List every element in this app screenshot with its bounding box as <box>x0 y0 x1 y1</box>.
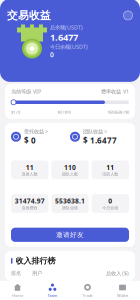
staticText: 直推费收 <box>22 205 38 210</box>
button[interactable]: Team <box>35 283 70 298</box>
button[interactable]: 受托收益 > <box>11 128 70 146</box>
staticText: Team <box>47 293 57 298</box>
button[interactable]: 邀请好友 <box>11 228 129 242</box>
staticText: Wallet <box>117 293 128 298</box>
staticText: Trade <box>82 293 92 298</box>
staticText: 邀请好友 <box>56 231 84 239</box>
button[interactable]: Wallet <box>105 283 140 298</box>
button[interactable]: Trade <box>70 283 105 298</box>
staticText: 团队业绩 <box>62 205 78 210</box>
staticText: 费率收益 V1 <box>101 88 129 95</box>
staticText: 用户 <box>32 270 42 277</box>
staticText: $593638 / $0 <box>108 110 129 115</box>
staticText: 总收入 ($) <box>106 270 129 277</box>
staticText: 交易收益 <box>7 9 51 22</box>
staticText: 排名 <box>11 270 21 277</box>
staticText: 直推人数 <box>22 172 38 177</box>
staticText: 活跃人数 <box>102 172 118 177</box>
staticText: 总余额(USDT) <box>50 24 83 31</box>
staticText: $ 1.6477 <box>83 135 117 146</box>
staticText: 1.6477 <box>50 31 78 43</box>
staticText: 受托收益 > <box>24 128 48 135</box>
staticText: Home <box>12 293 23 298</box>
staticText: 553638.1 <box>55 197 85 205</box>
staticText: 110 <box>64 163 76 172</box>
staticText: 团队收益 > <box>83 128 107 135</box>
staticText: 今日业绩 <box>102 205 118 210</box>
staticText: $1 / 0 <box>11 110 20 115</box>
button[interactable]: 团队收益 > <box>70 128 129 146</box>
staticText: 0 <box>108 197 112 205</box>
button[interactable]: Home <box>0 283 35 298</box>
staticText: 团队人数 <box>62 172 78 177</box>
staticText: $ 0 <box>24 135 36 146</box>
staticText: 31474.97 <box>15 197 45 205</box>
staticText: $0 / $10 <box>57 110 70 115</box>
staticText: 11 <box>26 163 34 172</box>
staticText: 11 <box>106 163 114 172</box>
staticText: 今日余额(USDT) <box>50 43 88 50</box>
staticText: 收入排行榜 <box>15 256 55 266</box>
staticText: 当前等级 VIP <box>11 88 41 95</box>
button[interactable]: Help <box>122 9 134 21</box>
staticText: 0 <box>50 50 54 59</box>
